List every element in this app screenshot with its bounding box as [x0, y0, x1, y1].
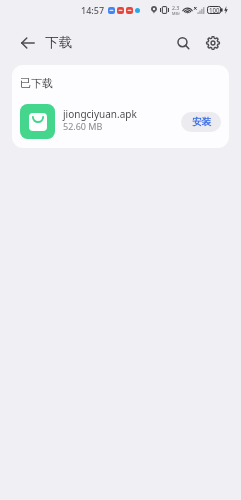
staticText: 下载: [45, 34, 72, 51]
staticText: 52.60 MB: [63, 120, 103, 132]
button[interactable]: 安装: [181, 112, 221, 132]
staticText: 100: [209, 6, 220, 14]
staticText: 2.3: [172, 4, 180, 11]
button[interactable]: jiongciyuan.apk: [12, 101, 229, 142]
staticText: MB/s: [172, 11, 180, 16]
button[interactable]: Back: [6, 21, 50, 65]
button[interactable]: Search: [168, 21, 198, 65]
staticText: 14:57: [81, 4, 105, 16]
staticText: jiongciyuan.apk: [63, 107, 137, 121]
staticText: 已下载: [20, 76, 53, 90]
staticText: 安装: [192, 116, 211, 128]
button[interactable]: Settings: [198, 21, 228, 65]
